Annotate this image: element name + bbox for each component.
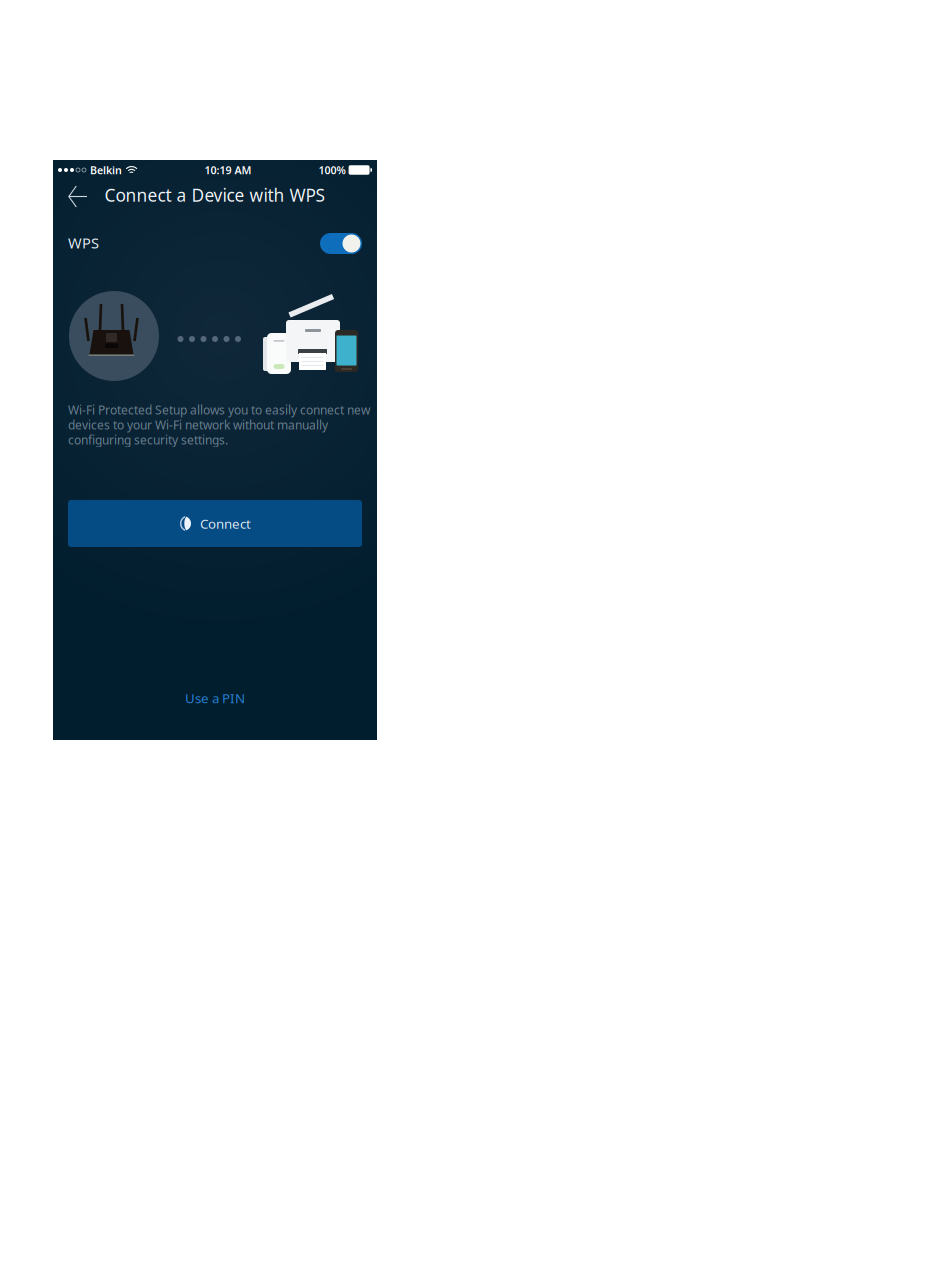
staticText: Connect [200, 515, 251, 532]
button[interactable]: WPS [320, 233, 362, 254]
staticText: 100% [319, 163, 346, 177]
button[interactable]: Use a PIN [53, 686, 377, 710]
staticText: Belkin [90, 163, 122, 177]
staticText: Connect a Device with WPS [104, 183, 325, 206]
staticText: WPS [68, 233, 99, 252]
staticText: Wi-Fi Protected Setup allows you to easi… [68, 402, 370, 448]
staticText: 10:19 AM [205, 163, 252, 177]
staticText: Use a PIN [185, 689, 245, 707]
button[interactable]: Connect [68, 500, 362, 547]
button[interactable]: Back [53, 178, 99, 215]
